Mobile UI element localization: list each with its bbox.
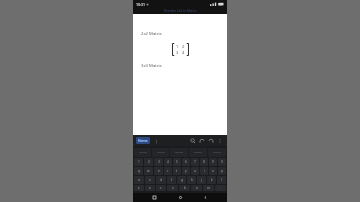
button[interactable]: d [156,176,166,184]
staticText: 4 [167,160,169,164]
button[interactable]: 2 [144,158,153,166]
button[interactable]: 8 [200,158,208,166]
staticText: Home [138,138,148,143]
staticText: w [147,169,150,173]
button[interactable]: 7 [191,158,199,166]
button[interactable]: e [154,167,163,175]
staticText: 2x2 Matrix [141,31,162,37]
staticText: m [207,186,210,190]
staticText: t [176,169,178,173]
button[interactable]: i [200,167,208,175]
staticText: a [138,178,140,182]
button[interactable]: f [167,176,176,184]
button[interactable]: 0 [218,158,226,166]
button[interactable]: j [197,176,206,184]
staticText: n [196,186,198,190]
button[interactable]: k [207,176,216,184]
button[interactable]: Home [136,137,150,144]
button[interactable]: Home [176,193,185,202]
staticText: k [211,178,213,182]
button[interactable]: Search [188,135,197,146]
staticText: u [194,169,196,173]
staticText: l [221,178,222,182]
button[interactable]: 6 [182,158,190,166]
staticText: g [181,178,183,182]
staticText: 2 [182,44,185,49]
button[interactable]: c [156,185,166,191]
button[interactable]: 9 [209,158,217,166]
staticText: e [158,169,160,173]
button[interactable]: v [167,185,178,191]
staticText: p [221,169,223,173]
staticText: v [172,186,174,190]
staticText: 10:31 [136,2,145,7]
button[interactable]: m [203,185,214,191]
button[interactable]: o [209,167,217,175]
staticText: 0 [221,160,223,164]
button[interactable]: t [173,167,181,175]
button[interactable]: Undo [197,135,206,146]
button[interactable]: h [187,176,196,184]
staticText: Reorder 2x2 to Matrix [164,9,197,13]
button[interactable]: Key [170,148,188,157]
button[interactable]: Key [189,148,207,157]
button[interactable]: 3 [154,158,163,166]
staticText: d [160,178,162,182]
staticText: 3 [158,160,160,164]
button[interactable]: 4 [164,158,172,166]
staticText: y [185,169,187,173]
staticText: 8 [203,160,205,164]
staticText: j [201,178,202,182]
button[interactable]: Recents [150,193,159,202]
button[interactable]: Redo [206,135,215,146]
button[interactable]: More options [153,138,159,144]
button[interactable]: 2x2 Matrix [133,30,227,38]
button[interactable]: x [145,185,155,191]
staticText: c [160,186,162,190]
button[interactable]: a [134,176,144,184]
button[interactable]: 3x3 Matrix [133,62,227,70]
staticText: 5 [176,160,178,164]
staticText: o [212,169,214,173]
button[interactable]: Key [208,148,226,157]
button[interactable]: u [191,167,199,175]
staticText: b [184,186,186,190]
staticText: r [167,169,169,173]
button[interactable]: g [177,176,186,184]
button[interactable]: Key [134,148,151,157]
button[interactable]: y [182,167,190,175]
button[interactable]: p [218,167,226,175]
staticText: 7 [194,160,196,164]
button[interactable]: r [164,167,172,175]
staticText: 1 [176,44,179,49]
staticText: 4 [182,50,185,55]
staticText: f [171,178,173,182]
staticText: h [191,178,193,182]
staticText: 6 [185,160,187,164]
button[interactable]: z [134,185,144,191]
button[interactable]: Back [201,193,210,202]
staticText: s [149,178,151,182]
staticText: 2 [148,160,150,164]
button[interactable]: 5 [173,158,181,166]
button[interactable]: 1 [134,158,143,166]
staticText: z [138,186,140,190]
staticText: i [204,169,205,173]
staticText: 3 [176,50,179,55]
button[interactable]: q [134,167,143,175]
staticText: q [138,169,140,173]
button[interactable]: w [144,167,153,175]
staticText: x [149,186,151,190]
button[interactable]: l [217,176,226,184]
button[interactable]: n [191,185,202,191]
button[interactable]: s [145,176,155,184]
staticText: . [220,186,221,190]
button[interactable]: b [179,185,190,191]
staticText: 1 [138,160,140,164]
button[interactable]: Key [152,148,169,157]
button[interactable]: Overflow [215,135,224,146]
staticText: 3x3 Matrix [141,63,162,69]
staticText: 9 [212,160,214,164]
